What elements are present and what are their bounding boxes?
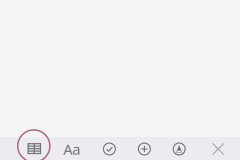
button[interactable]: Markup	[162, 137, 196, 160]
button[interactable]: Add attachment	[127, 137, 161, 160]
button[interactable]: Checklist	[92, 137, 126, 160]
button[interactable]: Close	[201, 137, 235, 160]
button[interactable]: Table	[16, 137, 52, 160]
button[interactable]: Aa	[55, 137, 89, 160]
staticText: Aa	[63, 139, 80, 159]
